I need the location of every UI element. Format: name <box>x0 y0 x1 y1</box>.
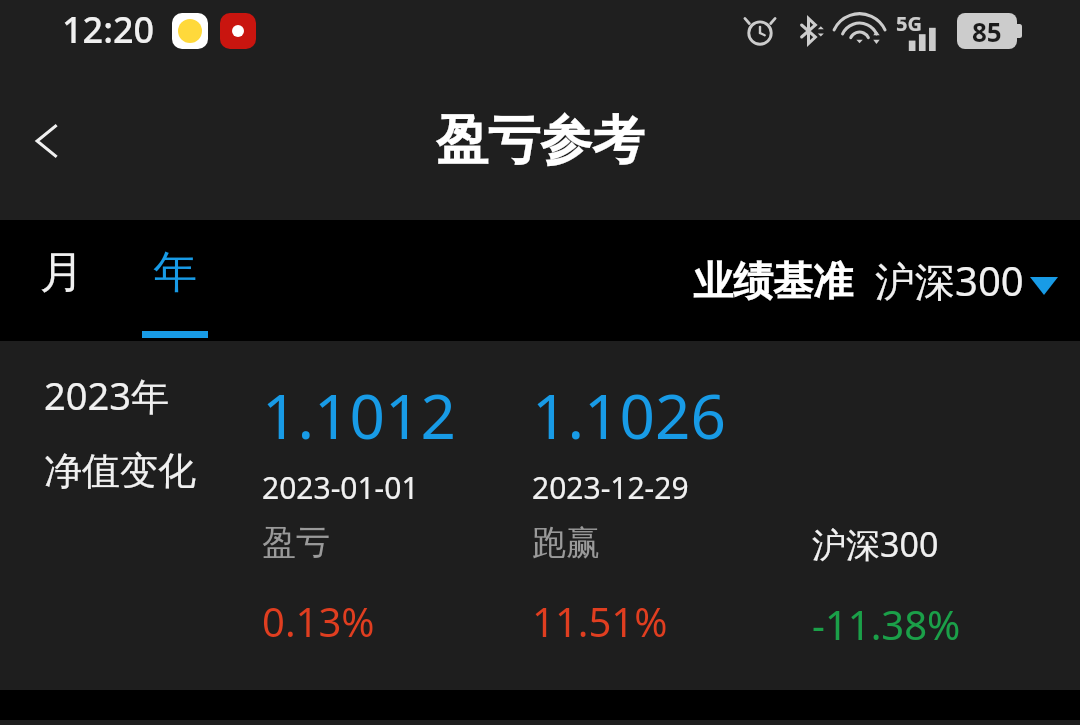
other: Battery 85 percent <box>957 13 1022 49</box>
staticText: 2023-12-29 <box>532 467 689 508</box>
staticText: 月 <box>40 245 84 300</box>
other: 5G signal <box>895 11 941 51</box>
staticText: 跑赢 <box>532 521 600 564</box>
button[interactable]: 年 <box>133 220 217 341</box>
staticText: 沪深300 <box>812 521 939 567</box>
other: Alarm <box>743 14 777 48</box>
staticText: 85 <box>972 14 1002 49</box>
staticText: 盈亏 <box>262 521 330 564</box>
staticText: 盈亏参考 <box>436 108 644 174</box>
button[interactable]: 月 <box>20 220 104 341</box>
staticText: 1.1012 <box>262 373 456 457</box>
staticText: 2023年 <box>44 369 169 421</box>
staticText: 年 <box>153 245 197 300</box>
staticText: 5G <box>896 10 922 37</box>
staticText: 1.1026 <box>532 373 726 457</box>
staticText: 12:20 <box>62 5 155 54</box>
staticText: 沪深300 <box>875 253 1024 308</box>
staticText: 业绩基准 <box>693 256 853 306</box>
other: Wi-Fi <box>843 13 879 49</box>
staticText: 0.13% <box>262 594 375 648</box>
button[interactable]: 业绩基准 <box>693 253 1058 308</box>
button[interactable]: Back <box>0 93 96 189</box>
staticText: 净值变化 <box>44 447 196 495</box>
staticText: -11.38% <box>812 597 961 651</box>
other: Bluetooth <box>795 16 825 46</box>
staticText: 2023-01-01 <box>262 467 419 508</box>
staticText: 11.51% <box>532 594 668 648</box>
